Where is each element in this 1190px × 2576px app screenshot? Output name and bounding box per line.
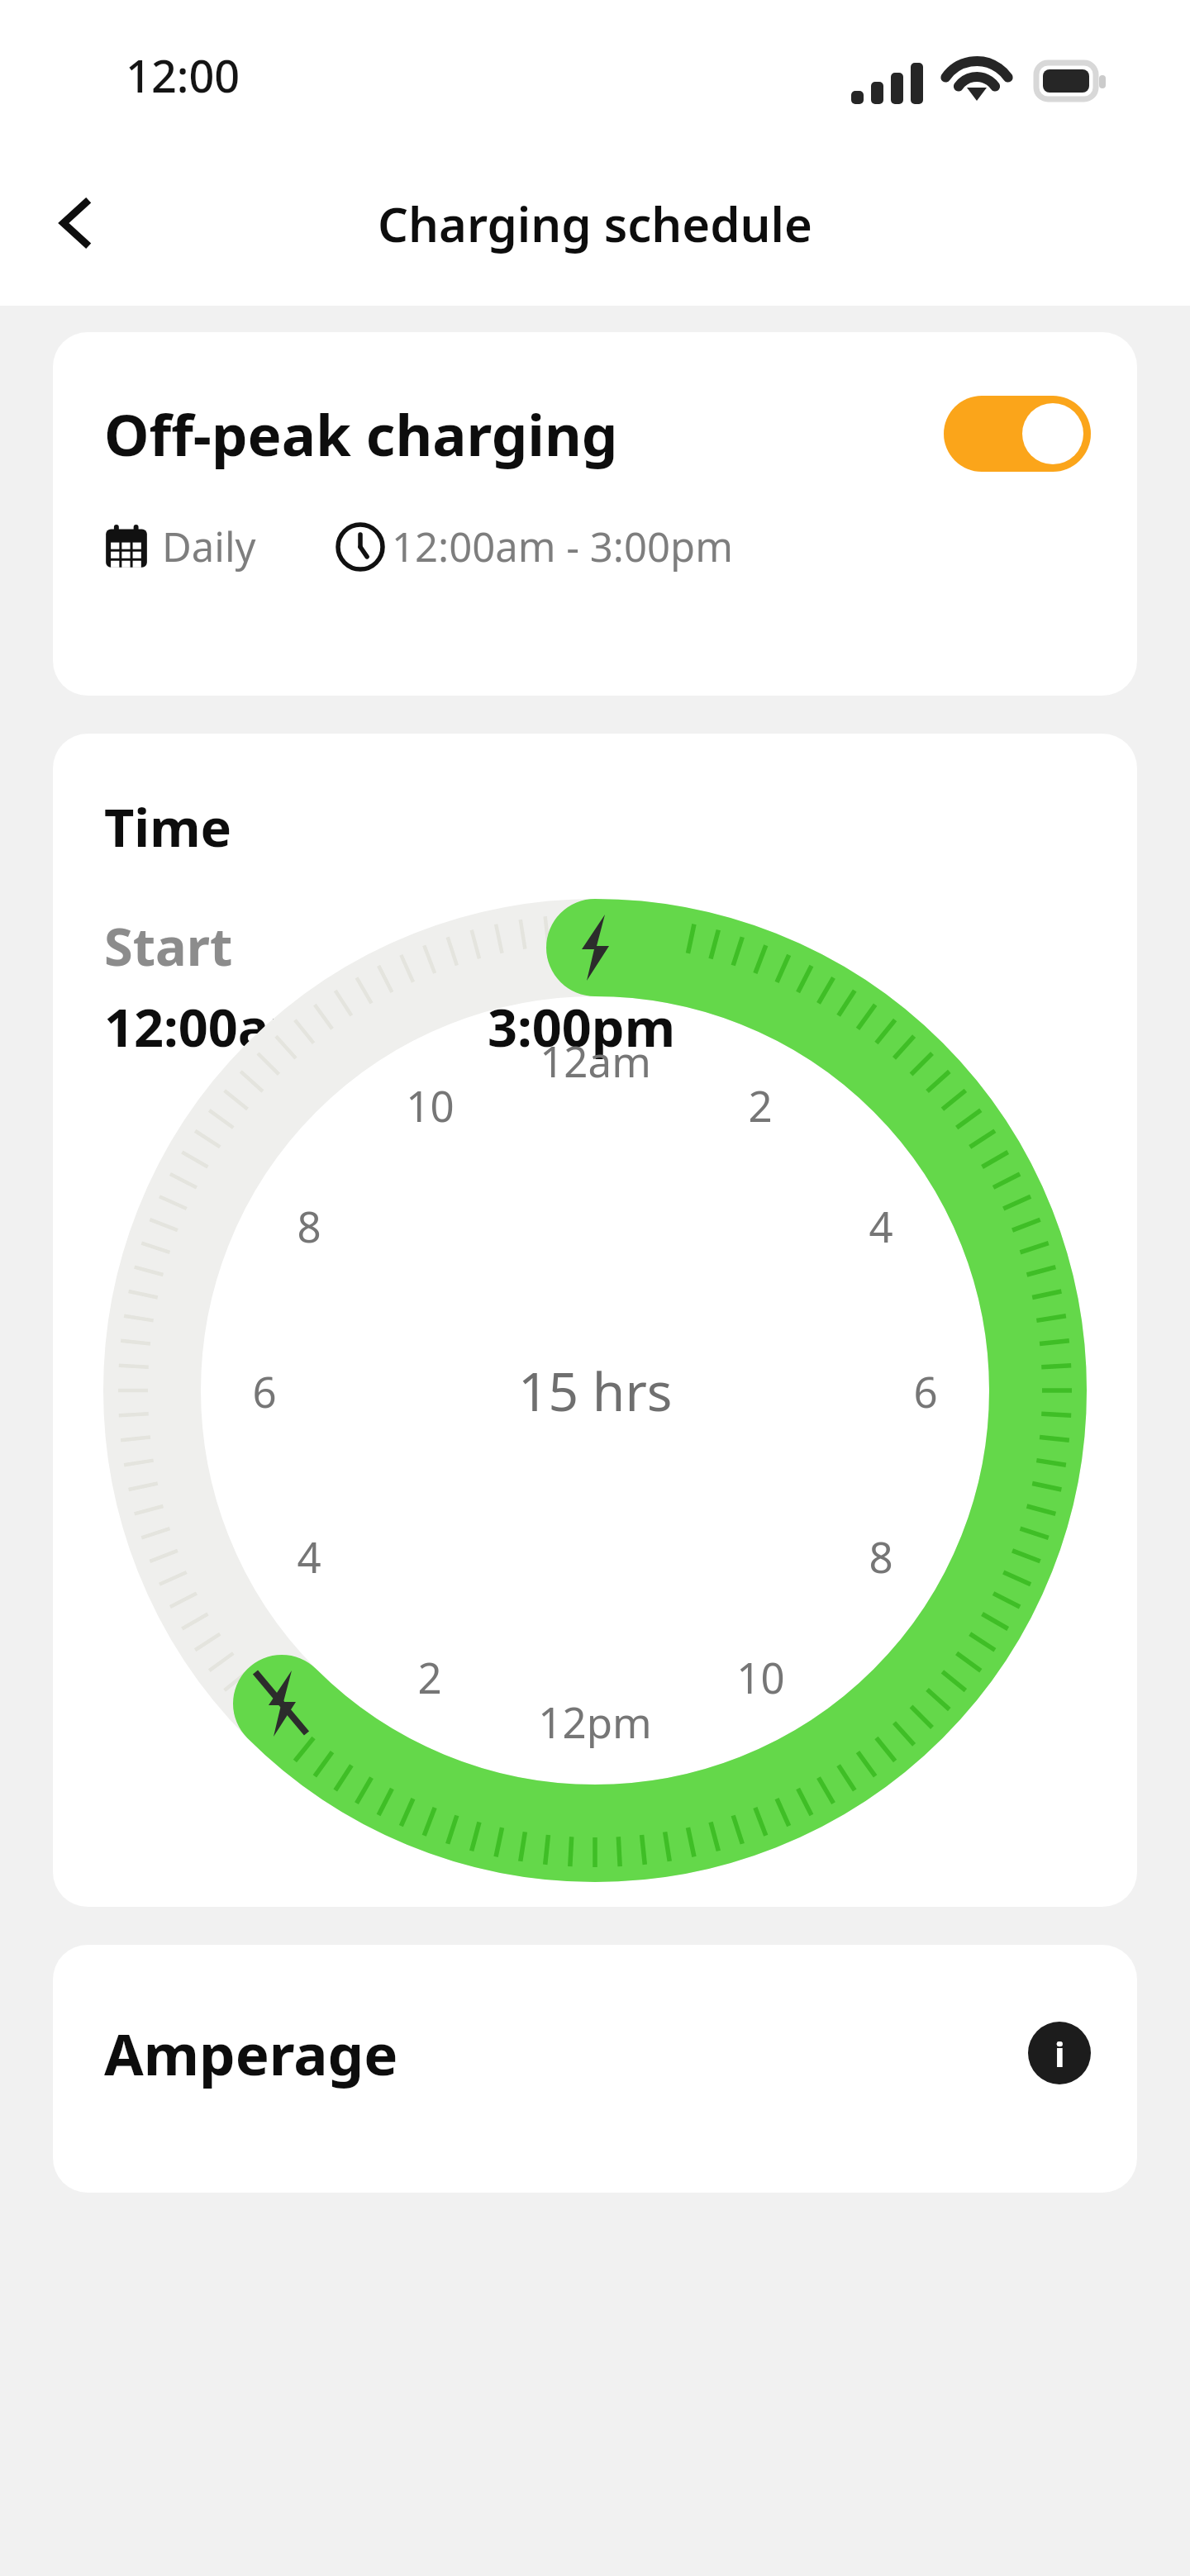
staticText: 15 hrs xyxy=(518,1355,673,1427)
staticText: 2 xyxy=(417,1648,442,1705)
staticText: 12pm xyxy=(538,1693,652,1750)
button[interactable]: Back xyxy=(28,173,127,273)
staticText: Off-peak charging xyxy=(104,395,944,473)
staticText: Daily xyxy=(162,519,256,574)
staticText: Charging schedule xyxy=(378,191,812,256)
staticText: Stop xyxy=(488,910,605,981)
staticText: 10 xyxy=(406,1077,455,1134)
staticText: 6 xyxy=(913,1362,938,1419)
staticText: Amperage xyxy=(104,2014,1028,2092)
staticText: 2 xyxy=(748,1077,773,1134)
staticText: 3:00pm xyxy=(488,991,676,1062)
button[interactable]: Amperage info xyxy=(1028,2022,1091,2084)
staticText: 12:00am xyxy=(104,991,321,1062)
staticText: 8 xyxy=(297,1197,321,1254)
staticText: 10 xyxy=(736,1648,785,1705)
staticText: 12:00 xyxy=(126,45,240,106)
staticText: 12:00am - 3:00pm xyxy=(392,519,733,574)
staticText: 4 xyxy=(297,1528,321,1585)
staticText: Start xyxy=(104,910,233,981)
button[interactable]: Charging time range dial, 12:00am to 3:0… xyxy=(103,899,1087,1882)
staticText: 4 xyxy=(869,1197,893,1254)
staticText: 8 xyxy=(869,1528,893,1585)
staticText: Time xyxy=(104,791,232,863)
staticText: i xyxy=(1054,2030,1065,2077)
staticText: 12am xyxy=(540,1032,651,1089)
button[interactable]: Off-peak charging toggle, on xyxy=(944,396,1091,472)
staticText: 6 xyxy=(252,1362,277,1419)
